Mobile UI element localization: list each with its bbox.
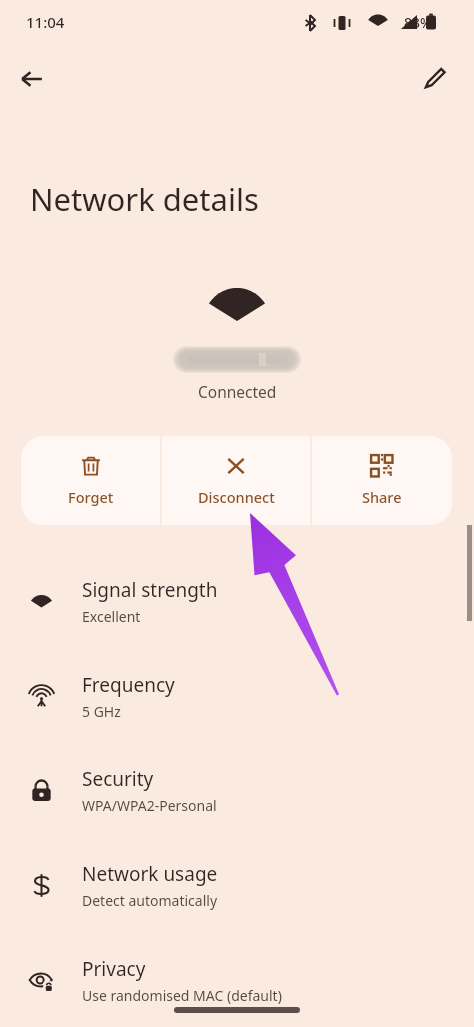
staticText: WPA/WPA2-Personal [82, 796, 217, 815]
button[interactable]: Back [8, 55, 56, 103]
staticText: Share [362, 487, 402, 507]
button[interactable]: Network usage [0, 844, 474, 926]
staticText: Network details [30, 178, 259, 220]
staticText: Privacy [82, 956, 146, 982]
staticText: Detect automatically [82, 891, 218, 910]
staticText: Frequency [82, 672, 175, 698]
staticText: Security [82, 766, 154, 792]
staticText: Signal strength [82, 577, 218, 603]
staticText: Excellent [82, 607, 141, 626]
staticText: Use randomised MAC (default) [82, 986, 282, 1005]
button[interactable]: Share [312, 436, 452, 525]
button[interactable]: Forget [21, 436, 160, 525]
staticText: Disconnect [198, 487, 275, 507]
button[interactable]: Privacy [0, 939, 474, 1021]
button[interactable]: Security [0, 749, 474, 831]
staticText: Network usage [82, 861, 218, 887]
staticText: 83% [404, 13, 432, 32]
staticText: 5 GHz [82, 702, 121, 721]
staticText: Connected [198, 381, 277, 402]
button[interactable]: Frequency [0, 655, 474, 737]
staticText: Forget [68, 487, 114, 507]
button[interactable]: Disconnect [162, 436, 310, 525]
button[interactable]: Edit [410, 55, 458, 103]
button[interactable]: Signal strength [0, 560, 474, 642]
staticText: 11:04 [26, 12, 65, 32]
